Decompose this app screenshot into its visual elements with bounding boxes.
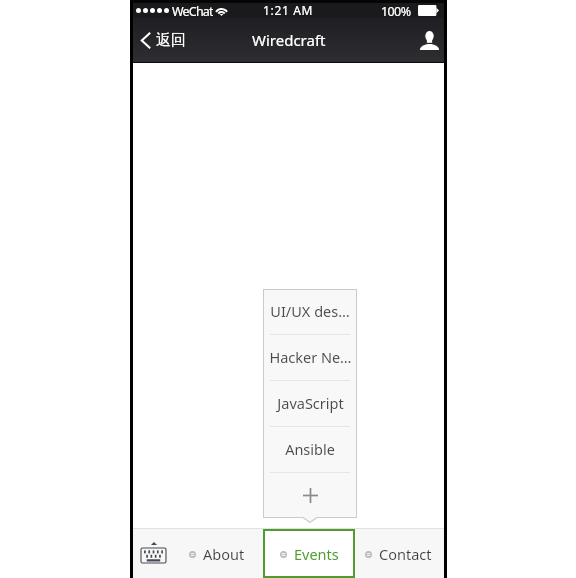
staticText: 返回 (156, 31, 186, 50)
staticText: Events (294, 544, 339, 564)
button[interactable]: About (171, 529, 263, 578)
button[interactable]: Contact (355, 529, 442, 578)
button[interactable]: JavaScript (263, 381, 357, 426)
staticText: 100% (381, 3, 411, 18)
button[interactable]: 返回 (133, 25, 196, 56)
staticText: Hacker Ne… (269, 347, 352, 367)
button[interactable]: Events (263, 529, 355, 578)
button[interactable]: Profile (415, 23, 444, 58)
button[interactable]: Hide keyboard (131, 529, 171, 578)
button[interactable]: Add (263, 473, 357, 518)
staticText: Wiredcraft (252, 30, 326, 50)
button[interactable]: Ansible (263, 427, 357, 472)
staticText: About (203, 544, 245, 564)
staticText: 1:21 AM (263, 2, 314, 17)
staticText: JavaScript (277, 393, 344, 413)
button[interactable]: UI/UX des… (263, 289, 357, 334)
staticText: Contact (379, 544, 432, 564)
staticText: WeChat (172, 3, 213, 18)
staticText: UI/UX des… (270, 301, 350, 321)
button[interactable]: Hacker Ne… (263, 335, 357, 380)
staticText: Ansible (285, 439, 335, 459)
